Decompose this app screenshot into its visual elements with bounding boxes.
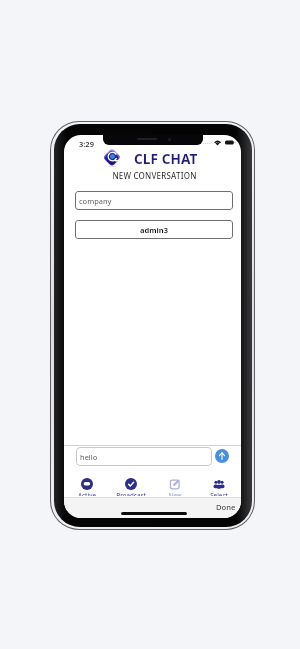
staticText: hello	[80, 452, 98, 462]
button[interactable]: Select	[197, 478, 241, 496]
staticText: Select	[210, 491, 228, 496]
staticText: Active	[78, 491, 96, 496]
button[interactable]: Broadcast	[109, 478, 153, 496]
staticText: 3:29	[79, 139, 94, 149]
button[interactable]: Active	[64, 478, 109, 496]
staticText: New	[168, 491, 182, 496]
button[interactable]: Done	[216, 502, 236, 512]
button[interactable]: hello	[76, 447, 212, 466]
staticText: Broadcast	[116, 491, 146, 496]
button[interactable]: admin3	[75, 220, 233, 239]
button[interactable]: New	[153, 478, 197, 496]
staticText: company	[79, 196, 112, 206]
staticText: CLF CHAT	[134, 149, 198, 168]
staticText: NEW CONVERSATION	[66, 170, 241, 181]
button[interactable]: Send	[215, 449, 229, 463]
staticText: admin3	[140, 225, 168, 235]
button[interactable]: company	[75, 191, 233, 210]
